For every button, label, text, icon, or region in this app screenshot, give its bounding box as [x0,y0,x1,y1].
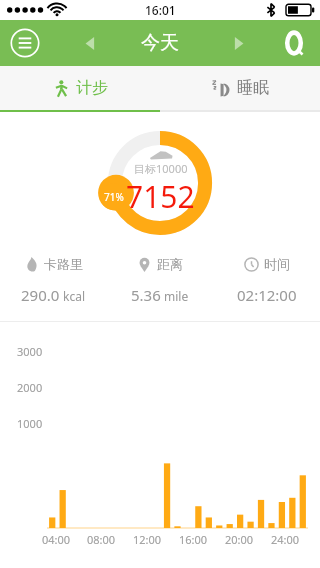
staticText: 计步 [76,78,108,98]
staticText: 16:01 [145,2,176,18]
button[interactable]: 计步 [0,66,160,110]
staticText: 02:12:00 [237,285,297,305]
staticText: 1000 [17,416,43,431]
button[interactable]: 卡路里 [0,256,106,272]
staticText: 16:00 [179,532,208,547]
staticText: 今天 [141,31,179,55]
staticText: 2000 [17,380,43,395]
staticText: 08:00 [87,532,116,547]
button[interactable]: 距离 [106,256,213,272]
staticText: 距离 [157,256,183,272]
staticText: 12:00 [133,532,162,547]
staticText: 24:00 [271,532,300,547]
staticText: 7152 [126,176,195,217]
staticText: 睡眠 [237,78,269,98]
staticText: 04:00 [42,532,71,547]
staticText: 卡路里 [44,256,83,272]
button[interactable]: App logo [278,27,310,59]
staticText: 290.0 [21,285,60,305]
staticText: kcal [63,288,85,304]
button[interactable]: Menu [8,26,42,60]
staticText: 5.36 [131,285,161,305]
button[interactable]: Next day [222,27,254,59]
button[interactable]: 睡眠 [160,66,320,110]
staticText: 71% [104,190,124,204]
staticText: 时间 [264,256,290,272]
button[interactable]: Previous day [74,27,106,59]
button[interactable]: 时间 [213,256,320,272]
staticText: 3000 [17,344,43,359]
staticText: 20:00 [225,532,254,547]
staticText: mile [164,288,189,304]
staticText: 目标10000 [134,161,188,176]
